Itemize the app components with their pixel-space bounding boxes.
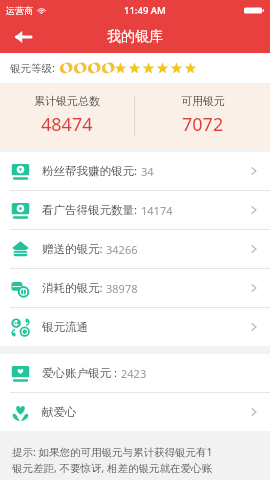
button[interactable]: 爱心账户银元 :	[0, 354, 270, 392]
staticText: 累计银元总数	[34, 94, 100, 108]
button[interactable]: 银元流通	[0, 308, 270, 346]
button[interactable]: 赠送的银元:	[0, 230, 270, 268]
button[interactable]: 粉丝帮我赚的银元:	[0, 152, 270, 190]
staticText: 我的银库	[107, 28, 163, 46]
button[interactable]: 消耗的银元:	[0, 269, 270, 307]
staticText: 消耗的银元:	[42, 280, 106, 296]
staticText: 爱心账户银元 :	[42, 365, 121, 381]
staticText: 34	[141, 164, 154, 179]
staticText: 献爱心	[42, 405, 77, 419]
staticText: 提示: 如果您的可用银元与累计获得银元有1 银元差距, 不要惊讶, 相差的银元就…	[12, 445, 213, 475]
staticText: 银元等级:	[10, 61, 55, 75]
staticText: 11:49 AM	[124, 4, 166, 17]
staticText: 可用银元	[181, 94, 225, 108]
staticText: 34266	[106, 242, 138, 257]
staticText: 运营商	[6, 5, 33, 16]
button[interactable]: Back	[8, 22, 38, 52]
staticText: 48474	[41, 112, 93, 137]
staticText: 14174	[141, 203, 173, 218]
staticText: 看广告得银元数量:	[42, 202, 141, 218]
staticText: 7072	[182, 112, 224, 137]
button[interactable]: 献爱心	[0, 393, 270, 431]
staticText: 银元流通	[42, 320, 88, 334]
staticText: 赠送的银元:	[42, 241, 106, 257]
staticText: 2423	[121, 366, 147, 381]
staticText: 粉丝帮我赚的银元:	[42, 163, 141, 179]
staticText: 38978	[106, 281, 138, 296]
button[interactable]: 看广告得银元数量:	[0, 191, 270, 229]
